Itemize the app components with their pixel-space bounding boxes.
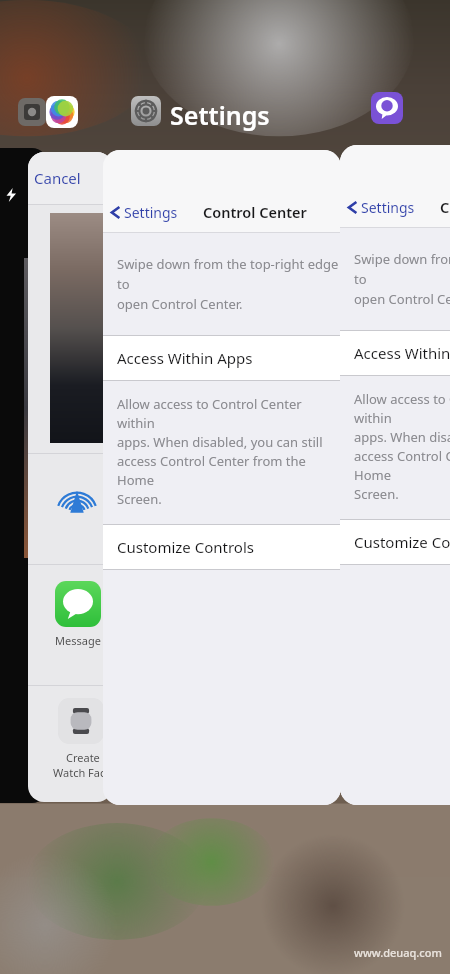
button[interactable]: Photos	[46, 96, 78, 128]
staticText: Allow access to Control Center within ap…	[354, 390, 450, 503]
button[interactable]: Settings	[103, 150, 341, 805]
staticText: Settings	[124, 203, 178, 222]
staticText: Settings	[361, 198, 415, 217]
staticText: Message	[55, 633, 101, 648]
staticText: www.deuaq.com	[354, 945, 442, 960]
button[interactable]: Access Within Apps	[340, 331, 450, 375]
button[interactable]: Camera	[18, 98, 46, 126]
button[interactable]: Cancel	[28, 152, 113, 802]
staticText: Swipe down from the top-right edge to op…	[354, 250, 450, 308]
button[interactable]: Access Within Apps	[103, 336, 341, 380]
button[interactable]: Cancel	[34, 168, 81, 188]
staticText: Access Within Apps	[117, 348, 253, 368]
staticText: Swipe down from the top-right edge to op…	[117, 255, 341, 313]
staticText: Settings	[170, 98, 270, 132]
button[interactable]: Viber	[371, 92, 403, 124]
staticText: Control Center	[203, 202, 307, 222]
staticText: Watch Face	[53, 765, 112, 780]
staticText: Allow access to Control Center within ap…	[117, 395, 341, 508]
staticText: Access Within Apps	[354, 343, 450, 363]
button[interactable]: Customize Controls	[103, 525, 341, 569]
button[interactable]: Create	[28, 686, 113, 802]
staticText: Customize Controls	[354, 532, 450, 552]
staticText: Create	[66, 750, 100, 765]
button[interactable]: Message	[28, 565, 113, 685]
button[interactable]: Settings	[340, 145, 450, 805]
button[interactable]	[28, 454, 113, 564]
button[interactable]: Settings	[109, 203, 178, 222]
button[interactable]	[0, 148, 48, 803]
staticText: Control Center	[440, 197, 450, 217]
button[interactable]: Customize Controls	[340, 520, 450, 564]
staticText: Customize Controls	[117, 537, 254, 557]
button[interactable]: Settings	[346, 198, 415, 217]
button[interactable]: Settings	[131, 96, 161, 126]
